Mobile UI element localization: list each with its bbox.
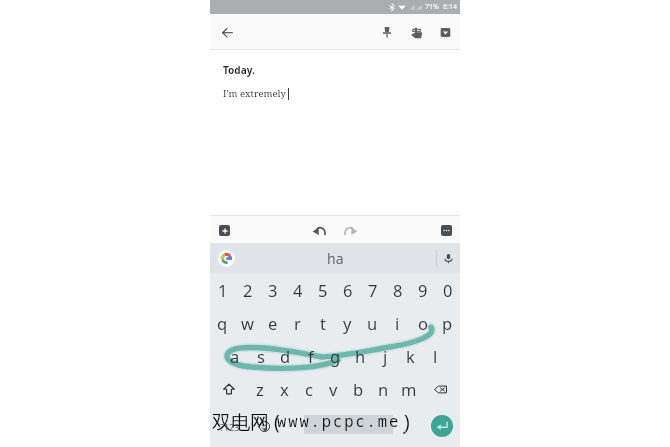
button[interactable]: 2: [235, 273, 260, 306]
button[interactable]: Undo: [307, 218, 331, 242]
button[interactable]: d: [273, 339, 298, 372]
staticText: t: [320, 312, 326, 334]
staticText: w: [241, 312, 254, 334]
button[interactable]: More options: [436, 220, 456, 240]
button[interactable]: 4: [285, 273, 310, 306]
button[interactable]: Shift: [210, 372, 248, 406]
staticText: n: [378, 378, 389, 400]
staticText: 7: [368, 279, 378, 301]
button[interactable]: l: [423, 339, 448, 372]
button[interactable]: Voice input: [437, 243, 460, 273]
staticText: 1: [218, 279, 228, 301]
button[interactable]: Backspace: [421, 372, 460, 406]
button[interactable]: 0: [435, 273, 460, 306]
staticText: q: [217, 312, 228, 334]
staticText: 9: [418, 279, 428, 301]
staticText: 4: [293, 279, 303, 301]
button[interactable]: f: [298, 339, 323, 372]
staticText: 0: [443, 279, 453, 301]
button[interactable]: q: [210, 306, 235, 339]
button[interactable]: s: [248, 339, 273, 372]
staticText: 双电网 (: [212, 409, 280, 435]
staticText: k: [406, 345, 415, 367]
button[interactable]: b: [346, 372, 371, 406]
button[interactable]: 5: [310, 273, 335, 306]
button[interactable]: y: [335, 306, 360, 339]
button[interactable]: Redo: [339, 218, 363, 242]
button[interactable]: z: [248, 372, 272, 406]
button[interactable]: Enter: [418, 406, 460, 447]
button[interactable]: m: [396, 372, 421, 406]
staticText: .: [402, 416, 407, 438]
button[interactable]: 3: [260, 273, 285, 306]
staticText: i: [395, 312, 400, 334]
button[interactable]: k: [398, 339, 423, 372]
button[interactable]: 8: [385, 273, 410, 306]
staticText: c: [305, 378, 313, 400]
staticText: ha: [327, 249, 344, 268]
button[interactable]: e: [260, 306, 285, 339]
staticText: www.pcpc.me: [277, 410, 401, 431]
staticText: 6: [343, 279, 353, 301]
button[interactable]: Space: [278, 406, 390, 447]
button[interactable]: t: [310, 306, 335, 339]
button[interactable]: u: [360, 306, 385, 339]
staticText: e: [268, 312, 278, 334]
button[interactable]: ha: [315, 245, 356, 272]
button[interactable]: i: [385, 306, 410, 339]
button[interactable]: Back: [216, 21, 238, 43]
staticText: ): [404, 409, 410, 435]
staticText: d: [280, 345, 291, 367]
button[interactable]: 9: [410, 273, 435, 306]
button[interactable]: o: [410, 306, 435, 339]
staticText: Today.: [223, 63, 255, 77]
staticText: v: [329, 378, 338, 400]
button[interactable]: j: [373, 339, 398, 372]
button[interactable]: w: [235, 306, 260, 339]
button[interactable]: Reminder: [404, 20, 428, 44]
staticText: j: [383, 345, 388, 367]
button[interactable]: Emoji: [250, 406, 278, 447]
staticText: 2: [243, 279, 253, 301]
staticText: 71%: [425, 2, 439, 12]
button[interactable]: x: [272, 372, 296, 406]
staticText: 3: [268, 279, 278, 301]
staticText: o: [418, 312, 428, 334]
button[interactable]: c: [296, 372, 321, 406]
button[interactable]: Google search: [216, 248, 236, 268]
button[interactable]: .: [390, 406, 418, 447]
staticText: r: [294, 312, 301, 334]
staticText: l: [433, 345, 438, 367]
staticText: g: [330, 345, 341, 367]
staticText: z: [256, 378, 264, 400]
staticText: s: [257, 345, 265, 367]
button[interactable]: p: [435, 306, 460, 339]
button[interactable]: v: [321, 372, 346, 406]
staticText: ?123: [220, 421, 240, 433]
button[interactable]: ?123: [210, 406, 250, 447]
staticText: m: [401, 378, 417, 400]
button[interactable]: a: [222, 339, 248, 372]
button[interactable]: 7: [360, 273, 385, 306]
staticText: a: [230, 345, 240, 367]
button[interactable]: g: [323, 339, 348, 372]
button[interactable]: n: [371, 372, 396, 406]
button[interactable]: 1: [210, 273, 235, 306]
button[interactable]: h: [348, 339, 373, 372]
staticText: 5: [318, 279, 328, 301]
staticText: p: [442, 312, 453, 334]
staticText: I'm extremely: [223, 87, 286, 100]
staticText: f: [308, 345, 314, 367]
staticText: y: [343, 312, 352, 334]
staticText: u: [367, 312, 378, 334]
button[interactable]: Add: [214, 220, 234, 240]
staticText: b: [353, 378, 364, 400]
button[interactable]: Pin: [375, 20, 399, 44]
staticText: 6:14: [443, 2, 457, 12]
button[interactable]: r: [285, 306, 310, 339]
button[interactable]: Archive: [433, 20, 457, 44]
staticText: h: [355, 345, 366, 367]
staticText: x: [280, 378, 289, 400]
staticText: 8: [393, 279, 403, 301]
button[interactable]: 6: [335, 273, 360, 306]
